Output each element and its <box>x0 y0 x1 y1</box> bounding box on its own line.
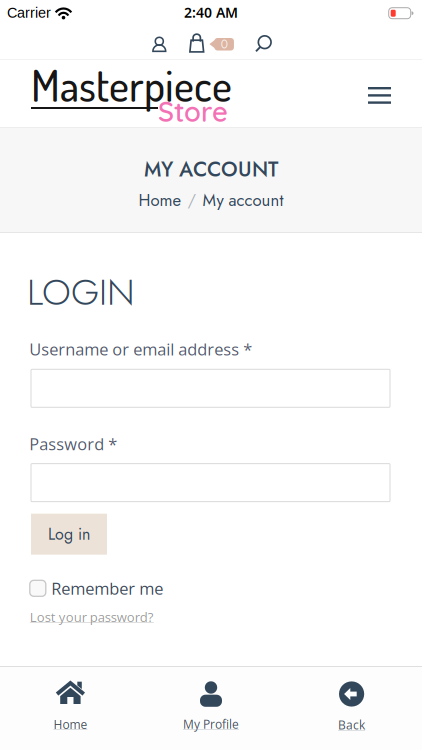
staticText: / <box>187 188 196 212</box>
staticText: 0 <box>221 36 228 53</box>
staticText: LOGIN <box>27 265 135 318</box>
staticText: My Profile <box>183 716 239 732</box>
staticText: Username or email address * <box>29 338 252 360</box>
staticText: Masterpiece <box>31 58 232 112</box>
staticText: Store <box>158 94 228 129</box>
button[interactable]: Home <box>138 188 181 212</box>
staticText: Home <box>53 716 87 732</box>
staticText: Home <box>138 188 181 212</box>
button[interactable]: My Profile <box>141 667 281 750</box>
staticText: 2:40 AM <box>184 3 238 22</box>
button[interactable]: Remember me <box>30 577 163 599</box>
button[interactable]: Log in <box>31 514 107 555</box>
staticText: Remember me <box>51 577 163 599</box>
button[interactable]: Search <box>255 36 271 52</box>
button[interactable]: My account <box>152 37 167 52</box>
button[interactable]: Home <box>0 667 141 750</box>
staticText: Lost your password? <box>30 608 154 626</box>
staticText: Password * <box>29 433 117 455</box>
button[interactable]: Menu <box>368 87 391 104</box>
staticText: MY ACCOUNT <box>144 154 278 184</box>
button[interactable]: Cart, 0 items <box>189 33 234 53</box>
button[interactable]: Back <box>281 667 422 750</box>
staticText: Back <box>338 717 365 733</box>
button[interactable]: Lost your password? <box>30 608 154 626</box>
staticText: Carrier <box>7 5 51 21</box>
staticText: My account <box>202 188 283 212</box>
staticText: Log in <box>48 523 90 546</box>
